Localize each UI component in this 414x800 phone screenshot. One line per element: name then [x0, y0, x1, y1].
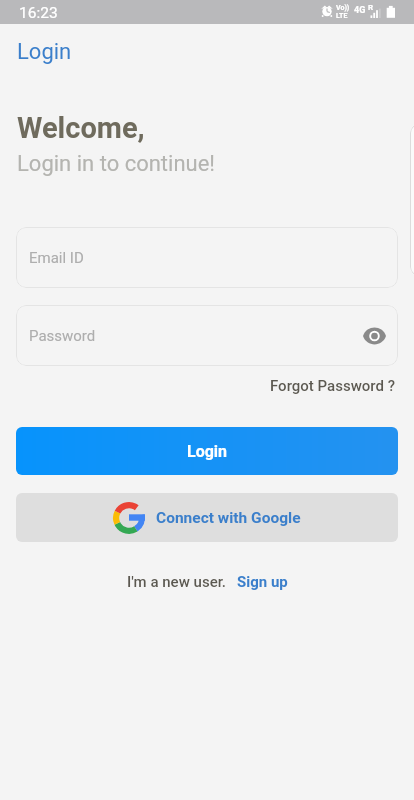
staticText: 4G: [354, 5, 366, 16]
staticText: Welcome,: [17, 111, 145, 145]
staticText: Login: [17, 39, 72, 65]
button[interactable]: Show password: [356, 318, 392, 354]
staticText: Login: [187, 442, 228, 461]
button[interactable]: Sign up: [237, 573, 288, 591]
staticText: 16:23: [19, 4, 58, 22]
staticText: I'm a new user.: [127, 573, 226, 591]
button[interactable]: Email ID: [16, 227, 398, 288]
button[interactable]: Login: [16, 427, 398, 475]
staticText: Password: [29, 327, 96, 345]
staticText: R: [368, 3, 374, 12]
button[interactable]: Forgot Password ?: [270, 377, 414, 395]
staticText: Vo)): [336, 4, 350, 12]
staticText: Email ID: [29, 249, 84, 267]
staticText: Login in to continue!: [17, 151, 216, 177]
button[interactable]: Connect with Google: [16, 493, 398, 542]
staticText: Connect with Google: [156, 509, 301, 527]
button[interactable]: Password: [16, 305, 398, 366]
staticText: LTE: [336, 12, 348, 20]
